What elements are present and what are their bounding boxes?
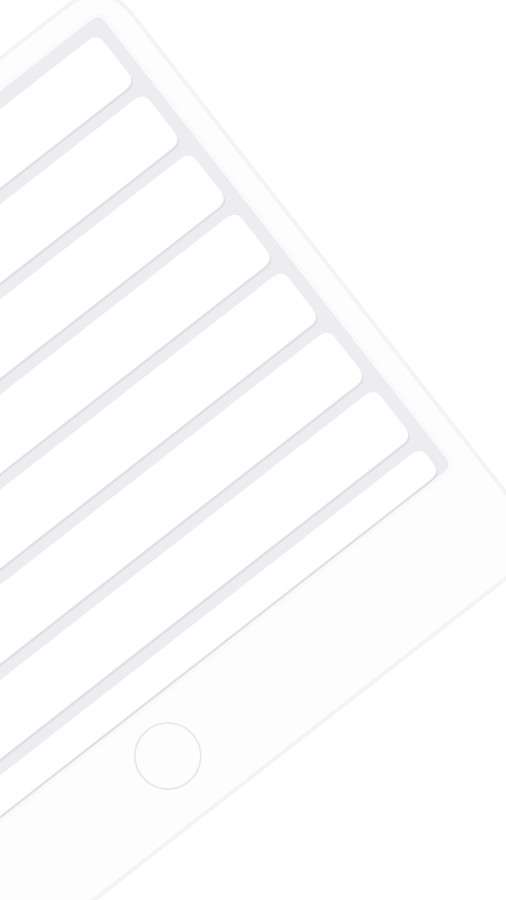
button[interactable]: Doctor list on phone [0, 0, 506, 900]
